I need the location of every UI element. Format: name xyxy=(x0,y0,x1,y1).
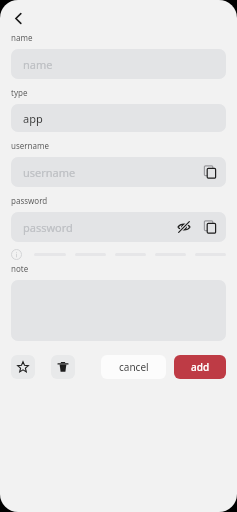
button[interactable]: app xyxy=(11,104,226,132)
staticText: cancel xyxy=(119,360,149,374)
button[interactable]: Copy username xyxy=(198,160,222,184)
button[interactable]: add xyxy=(174,355,226,379)
staticText: username xyxy=(11,140,50,151)
staticText: add xyxy=(191,360,210,374)
button[interactable]: Show password xyxy=(172,215,196,239)
staticText: type xyxy=(11,87,28,98)
staticText: password xyxy=(11,195,48,206)
button[interactable]: Delete xyxy=(51,355,75,379)
button[interactable]: Password strength info xyxy=(11,249,22,260)
staticText: name xyxy=(11,32,33,43)
button[interactable]: Favorite xyxy=(11,355,35,379)
button[interactable]: Back xyxy=(4,4,32,32)
staticText: app xyxy=(23,111,43,126)
button[interactable]: name xyxy=(11,49,226,79)
button[interactable]: username xyxy=(11,157,226,187)
staticText: password xyxy=(23,220,73,235)
staticText: note xyxy=(11,263,29,274)
button[interactable]: password xyxy=(11,212,226,242)
staticText: name xyxy=(23,57,53,72)
button[interactable]: Copy password xyxy=(198,215,222,239)
staticText: username xyxy=(23,165,76,180)
button[interactable]: cancel xyxy=(101,355,166,379)
